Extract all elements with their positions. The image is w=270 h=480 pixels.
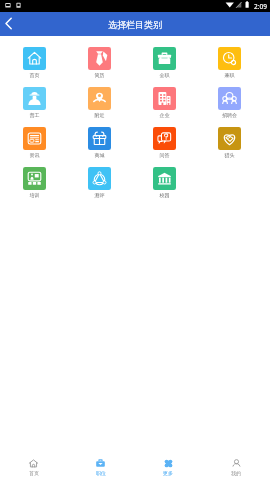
- button[interactable]: 校园: [153, 167, 218, 198]
- button[interactable]: 测评: [88, 167, 153, 198]
- staticText: 我的: [231, 470, 241, 476]
- staticText: 校园: [153, 192, 176, 198]
- button[interactable]: 全职: [153, 47, 218, 78]
- staticText: 猎头: [218, 152, 241, 158]
- staticText: 选择栏目类别: [108, 19, 162, 30]
- staticText: 2:09: [254, 2, 267, 11]
- button[interactable]: 猎头: [218, 127, 270, 158]
- staticText: 附近: [88, 112, 111, 118]
- button[interactable]: 兼职: [218, 47, 270, 78]
- button[interactable]: 培训: [23, 167, 88, 198]
- button[interactable]: 问答: [153, 127, 218, 158]
- staticText: 问答: [153, 152, 176, 158]
- staticText: 测评: [88, 192, 111, 198]
- staticText: 全职: [153, 72, 176, 78]
- button[interactable]: 附近: [88, 87, 153, 118]
- staticText: 企业: [153, 112, 176, 118]
- button[interactable]: 普工: [23, 87, 88, 118]
- button[interactable]: Back: [0, 12, 17, 36]
- button[interactable]: 我的: [202, 450, 270, 476]
- staticText: 更多: [163, 470, 173, 476]
- button[interactable]: 企业: [153, 87, 218, 118]
- staticText: 首页: [29, 470, 39, 476]
- button[interactable]: 资讯: [23, 127, 88, 158]
- button[interactable]: 招聘会: [218, 87, 270, 118]
- staticText: 职位: [96, 470, 106, 476]
- staticText: 招聘会: [218, 112, 241, 118]
- button[interactable]: 首页: [0, 450, 67, 476]
- staticText: 商城: [88, 152, 111, 158]
- staticText: 资讯: [23, 152, 46, 158]
- button[interactable]: 更多: [134, 450, 202, 476]
- staticText: 兼职: [218, 72, 241, 78]
- button[interactable]: 简历: [88, 47, 153, 78]
- button[interactable]: 首页: [23, 47, 88, 78]
- staticText: 培训: [23, 192, 46, 198]
- staticText: 普工: [23, 112, 46, 118]
- staticText: 首页: [23, 72, 46, 78]
- button[interactable]: 商城: [88, 127, 153, 158]
- staticText: 简历: [88, 72, 111, 78]
- button[interactable]: 职位: [67, 450, 134, 476]
